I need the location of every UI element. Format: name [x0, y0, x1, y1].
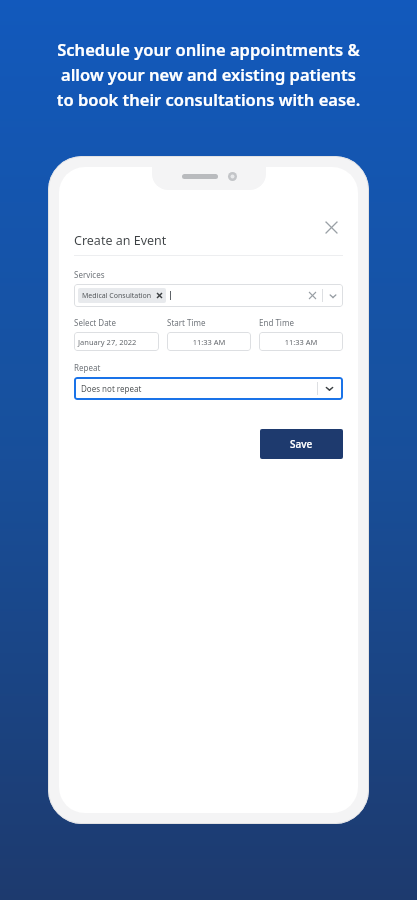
button[interactable]: Medical Consultation [74, 284, 343, 307]
staticText: Services [74, 269, 105, 280]
staticText: Repeat [74, 362, 101, 373]
staticText: 11:33 AM [171, 337, 247, 347]
button[interactable]: Save [260, 429, 343, 459]
staticText: Schedule your online appointments & allo… [18, 38, 399, 110]
staticText: Medical Consultation [82, 291, 152, 301]
staticText: Select Date [74, 317, 117, 328]
staticText: 11:33 AM [263, 337, 339, 347]
staticText: January 27, 2022 [78, 337, 155, 347]
staticText: End Time [259, 317, 294, 328]
staticText: Create an Event [74, 232, 167, 249]
button[interactable]: Does not repeat [74, 377, 343, 400]
staticText: Start Time [167, 317, 206, 328]
staticText: Save [290, 437, 313, 451]
button[interactable]: 11:33 AM [259, 332, 343, 351]
staticText: Does not repeat [81, 383, 142, 394]
button[interactable]: January 27, 2022 [74, 332, 159, 351]
button[interactable]: 11:33 AM [167, 332, 251, 351]
button[interactable]: Close [319, 215, 343, 239]
